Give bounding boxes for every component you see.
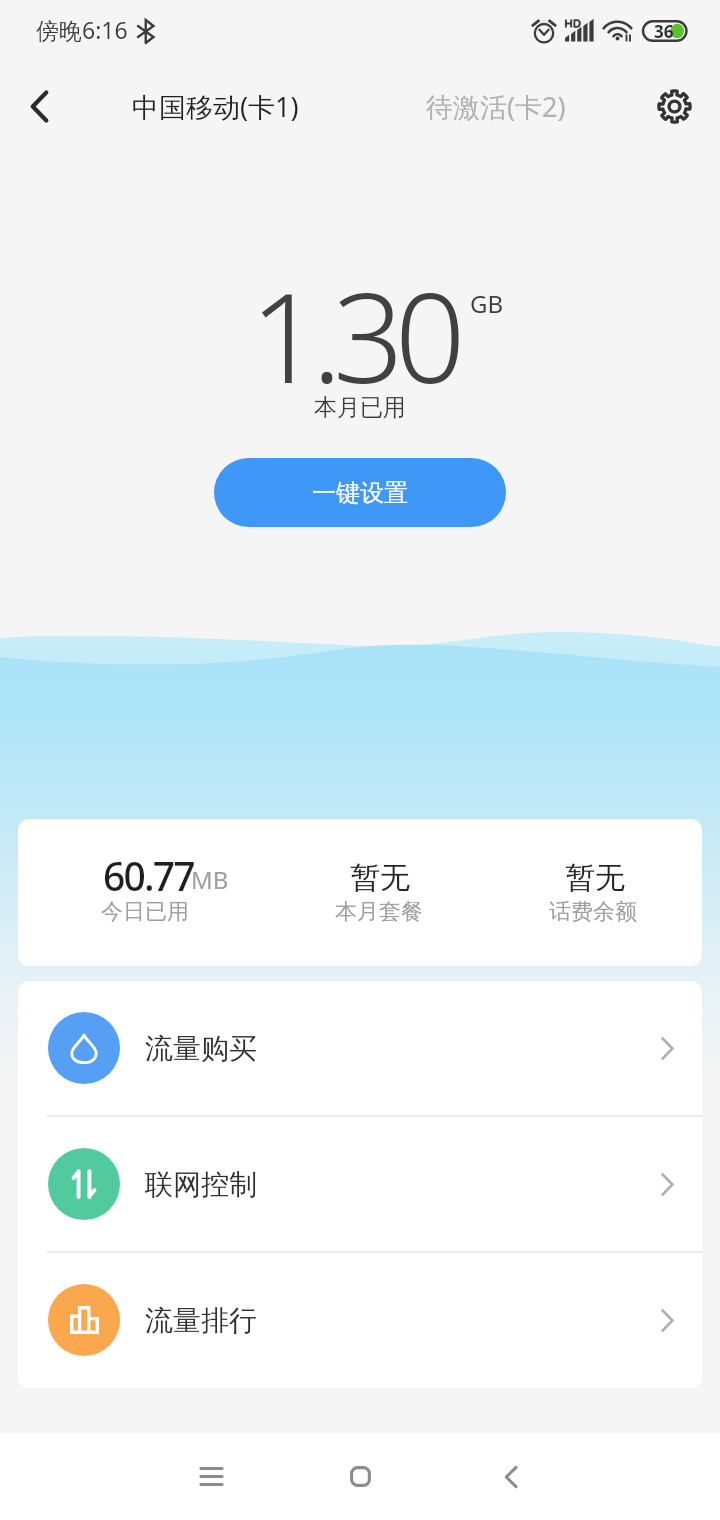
button[interactable]: 待激活(卡2) — [414, 78, 578, 135]
staticText: 流量购买 — [145, 1031, 257, 1066]
staticText: 暂无 — [350, 859, 410, 897]
button[interactable]: 一键设置 — [214, 458, 506, 527]
button[interactable]: Back — [11, 78, 67, 134]
staticText: 今日已用 — [101, 898, 189, 926]
staticText: 待激活(卡2) — [426, 88, 566, 125]
staticText: 流量排行 — [145, 1303, 257, 1338]
staticText: 一键设置 — [312, 478, 408, 508]
staticText: 本月套餐 — [335, 898, 423, 926]
button[interactable]: Home — [310, 1433, 410, 1520]
button[interactable]: 联网控制 — [18, 1117, 702, 1251]
staticText: GB — [470, 287, 504, 320]
button[interactable]: Back — [461, 1433, 561, 1520]
button[interactable]: 中国移动(卡1) — [120, 78, 311, 135]
staticText: 傍晚6:16 — [36, 14, 128, 45]
button[interactable]: Settings — [646, 78, 702, 134]
staticText: MB — [191, 863, 229, 896]
button[interactable]: 流量排行 — [18, 1253, 702, 1387]
staticText: 话费余额 — [549, 898, 637, 926]
staticText: 36 — [654, 20, 674, 43]
staticText: 60.77 — [103, 849, 194, 902]
staticText: 1.30 — [250, 250, 457, 419]
staticText: 本月已用 — [314, 393, 406, 422]
button[interactable]: 流量购买 — [18, 981, 702, 1115]
staticText: 中国移动(卡1) — [132, 88, 299, 125]
button[interactable]: Recents — [161, 1433, 261, 1520]
staticText: 联网控制 — [145, 1167, 257, 1202]
staticText: 暂无 — [565, 859, 625, 897]
